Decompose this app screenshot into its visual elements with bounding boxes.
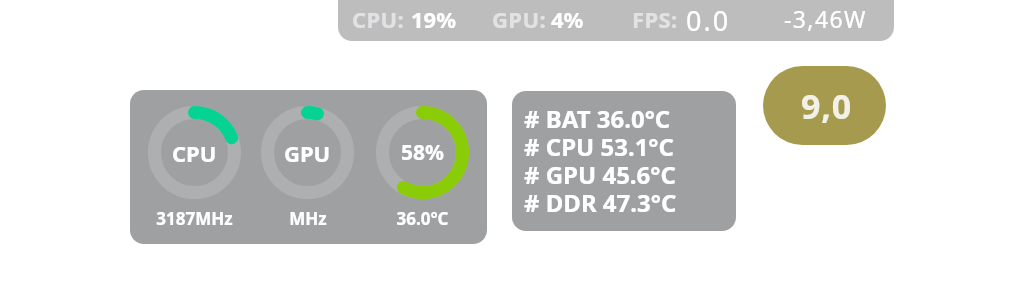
staticText: FPS: xyxy=(632,4,678,34)
button[interactable]: 9,0 xyxy=(763,66,886,145)
staticText: GPU xyxy=(284,138,331,168)
staticText: -3,46W xyxy=(784,3,867,34)
staticText: # GPU 45.6°C xyxy=(524,158,676,186)
staticText: # BAT 36.0°C xyxy=(524,102,671,130)
button[interactable]: Performance overlay xyxy=(338,0,894,41)
staticText: # CPU 53.1°C xyxy=(524,130,674,158)
staticText: 9,0 xyxy=(801,83,852,129)
button[interactable]: GPU usage 4 percent xyxy=(260,105,355,230)
staticText: 0.0 xyxy=(686,2,731,39)
button[interactable]: # BAT 36.0°C xyxy=(512,91,736,231)
button[interactable]: Battery 58 percent xyxy=(375,105,470,230)
staticText: 58% xyxy=(401,138,444,167)
button[interactable]: CPU usage 19 percent xyxy=(147,105,242,230)
staticText: CPU: xyxy=(352,4,405,34)
staticText: # DDR 47.3°C xyxy=(524,186,677,214)
staticText: 4% xyxy=(551,4,584,34)
staticText: GPU: xyxy=(492,4,547,34)
staticText: CPU xyxy=(172,138,217,168)
staticText: 36.0°C xyxy=(396,207,449,230)
staticText: MHz xyxy=(289,207,327,230)
staticText: 3187MHz xyxy=(156,207,233,230)
staticText: 19% xyxy=(411,4,457,34)
